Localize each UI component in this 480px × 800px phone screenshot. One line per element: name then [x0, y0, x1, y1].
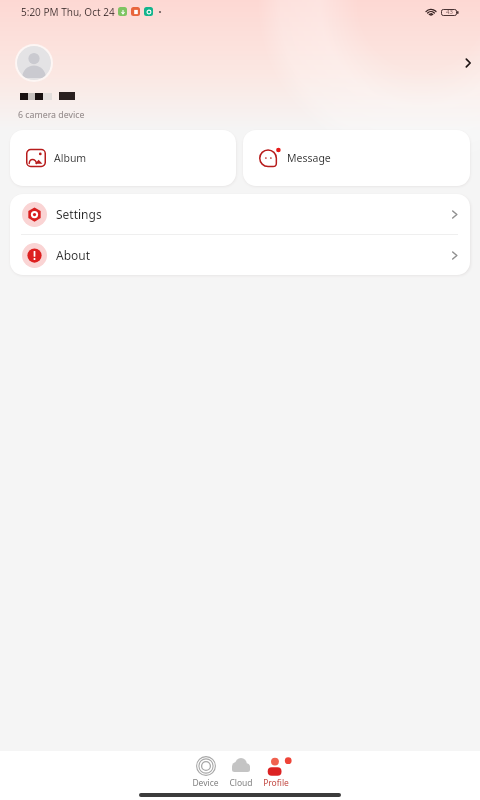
staticText: 43: [446, 8, 453, 16]
button[interactable]: Device: [188, 756, 223, 790]
button[interactable]: Settings: [10, 194, 470, 234]
staticText: 6 camera device: [18, 109, 85, 121]
button[interactable]: Profile: [258, 756, 293, 790]
button[interactable]: About: [10, 235, 470, 275]
button[interactable]: Account details: [454, 49, 480, 77]
staticText: 5:20 PM Thu, Oct 24: [21, 5, 115, 19]
staticText: Message: [287, 151, 331, 165]
staticText: Album: [54, 151, 87, 165]
staticText: Settings: [56, 206, 102, 222]
button[interactable]: Message: [243, 130, 470, 186]
staticText: About: [56, 247, 91, 263]
button[interactable]: Cloud: [223, 756, 258, 790]
staticText: Profile: [263, 777, 289, 789]
staticText: Device: [192, 777, 219, 789]
button[interactable]: Album: [10, 130, 236, 186]
staticText: Cloud: [229, 777, 253, 789]
